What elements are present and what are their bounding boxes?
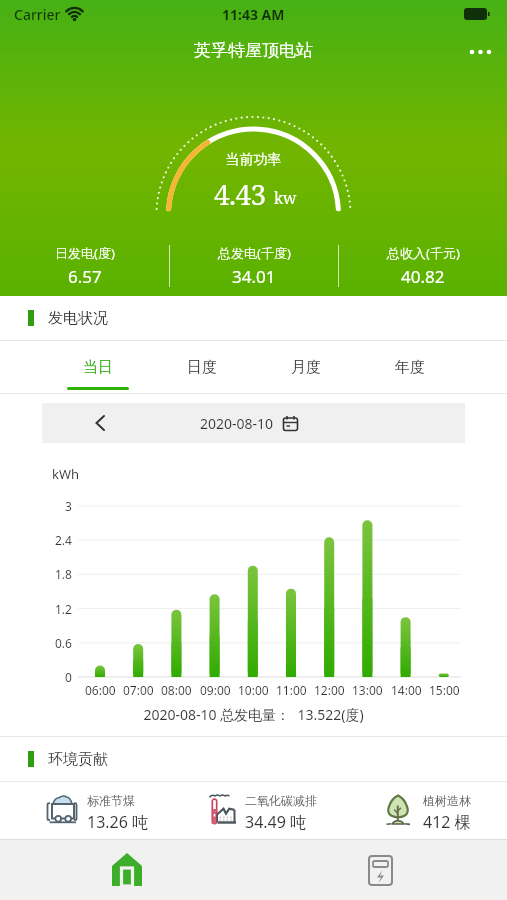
staticText: 6.57 <box>68 265 102 288</box>
staticText: 2.4 <box>55 532 72 548</box>
staticText: 年度 <box>395 358 425 377</box>
staticText: 0.6 <box>55 635 72 651</box>
staticText: 总发电(千度) <box>218 244 291 262</box>
staticText: 日发电(度) <box>55 244 115 262</box>
staticText: 环境贡献 <box>48 750 108 769</box>
button[interactable] <box>0 840 253 900</box>
staticText: 11:43 AM <box>222 5 285 24</box>
staticText: 植树造林 <box>423 793 471 808</box>
button[interactable] <box>72 403 128 443</box>
button[interactable]: 总发电(千度) <box>170 244 338 288</box>
staticText: kw <box>274 187 297 208</box>
staticText: 标准节煤 <box>87 793 135 808</box>
staticText: 1.8 <box>55 566 72 582</box>
staticText: 日度 <box>187 358 217 377</box>
button[interactable]: 植树造林 <box>381 793 497 833</box>
button[interactable]: 日发电(度) <box>0 244 169 288</box>
staticText: 34.01 <box>232 265 276 288</box>
staticText: 当日 <box>83 358 113 377</box>
button[interactable]: 年度 <box>358 341 462 393</box>
staticText: 09:00 <box>200 682 231 698</box>
staticText: 15:00 <box>429 682 460 698</box>
button[interactable] <box>283 416 298 431</box>
button[interactable]: 二氧化碳减排 <box>203 793 381 833</box>
staticText: 08:00 <box>161 682 192 698</box>
button[interactable]: 月度 <box>254 341 358 393</box>
button[interactable]: 总收入(千元) <box>339 244 507 288</box>
staticText: 总收入(千元) <box>387 244 460 262</box>
staticText: Carrier <box>14 5 61 24</box>
staticText: 3 <box>65 498 72 514</box>
staticText: 13.26 吨 <box>87 811 149 833</box>
staticText: 14:00 <box>391 682 422 698</box>
staticText: 发电状况 <box>48 309 108 328</box>
staticText: kWh <box>52 465 80 483</box>
button[interactable] <box>253 840 507 900</box>
staticText: 07:00 <box>123 682 154 698</box>
staticText: 10:00 <box>238 682 269 698</box>
button[interactable]: 当日 <box>45 341 150 393</box>
staticText: 4.43 <box>214 175 266 213</box>
staticText: 1.2 <box>55 601 72 617</box>
staticText: 12:00 <box>314 682 345 698</box>
staticText: 06:00 <box>85 682 116 698</box>
staticText: 月度 <box>291 358 321 377</box>
button[interactable]: 标准节煤 <box>45 793 203 833</box>
staticText: 13:00 <box>352 682 383 698</box>
staticText: 2020-08-10 总发电量： 13.522(度) <box>0 705 507 724</box>
staticText: 2020-08-10 <box>200 414 274 433</box>
staticText: 0 <box>65 669 72 685</box>
staticText: 二氧化碳减排 <box>245 793 317 808</box>
staticText: 40.82 <box>401 265 445 288</box>
button[interactable] <box>469 45 507 59</box>
staticText: 34.49 吨 <box>245 811 307 833</box>
button[interactable]: 日度 <box>150 341 254 393</box>
staticText: 英孚特屋顶电站 <box>0 40 507 61</box>
staticText: 11:00 <box>276 682 307 698</box>
staticText: 当前功率 <box>0 151 507 169</box>
staticText: 412 棵 <box>423 811 471 833</box>
